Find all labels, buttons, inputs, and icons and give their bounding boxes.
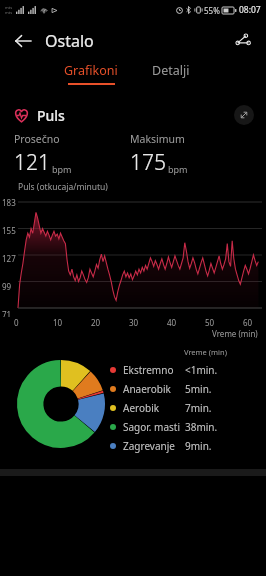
staticText: 10	[53, 317, 63, 328]
button[interactable]: Back	[8, 26, 38, 56]
staticText: 0	[14, 317, 19, 328]
staticText: <1min.	[185, 363, 218, 377]
staticText: Sagor. masti	[123, 420, 181, 434]
staticText: Anaerobik	[123, 382, 171, 396]
staticText: mts	[5, 5, 13, 10]
staticText: mts	[5, 10, 13, 15]
staticText: Aerobik	[123, 401, 160, 415]
staticText: 7min.	[185, 401, 212, 415]
staticText: 121	[14, 148, 50, 177]
staticText: Ostalo	[45, 30, 94, 52]
staticText: 175	[130, 148, 166, 177]
staticText: Prosečno	[14, 132, 60, 146]
staticText: 30	[129, 317, 139, 328]
button[interactable]: Sagor. masti	[110, 417, 260, 436]
button[interactable]: Zagrevanje	[110, 436, 260, 455]
staticText: 55%	[204, 5, 220, 16]
button[interactable]: Expand chart	[234, 105, 254, 125]
staticText: 40	[167, 317, 177, 328]
staticText: Puls	[37, 106, 65, 125]
staticText: 71	[2, 309, 12, 317]
staticText: Maksimum	[130, 132, 185, 146]
button[interactable]: Detalji	[146, 62, 196, 79]
staticText: bpm	[168, 163, 188, 175]
staticText: 9min.	[185, 439, 212, 453]
staticText: Puls (otkucaja/minutu)	[18, 181, 108, 193]
button[interactable]: Aerobik	[110, 398, 260, 417]
staticText: 183	[2, 197, 16, 208]
staticText: 20	[91, 317, 101, 328]
button[interactable]: Grafikoni	[58, 62, 124, 85]
staticText: 50	[205, 317, 215, 328]
staticText: bpm	[52, 163, 72, 175]
staticText: Detalji	[152, 62, 190, 79]
staticText: 38min.	[185, 420, 218, 434]
staticText: Ekstremno	[123, 363, 174, 377]
staticText: Zagrevanje	[123, 439, 175, 453]
button[interactable]: Share	[228, 26, 258, 56]
staticText: 99	[2, 281, 12, 292]
staticText: Grafikoni	[64, 62, 118, 79]
button[interactable]: Anaerobik	[110, 379, 260, 398]
staticText: 127	[2, 253, 16, 264]
staticText: 60	[243, 317, 253, 328]
staticText: 08:07	[239, 4, 261, 16]
staticText: Vreme (min)	[184, 347, 227, 357]
staticText: 5min.	[185, 382, 212, 396]
staticText: 155	[2, 225, 16, 236]
staticText: Vreme (min)	[212, 328, 258, 339]
button[interactable]: Ekstremno	[110, 360, 260, 379]
